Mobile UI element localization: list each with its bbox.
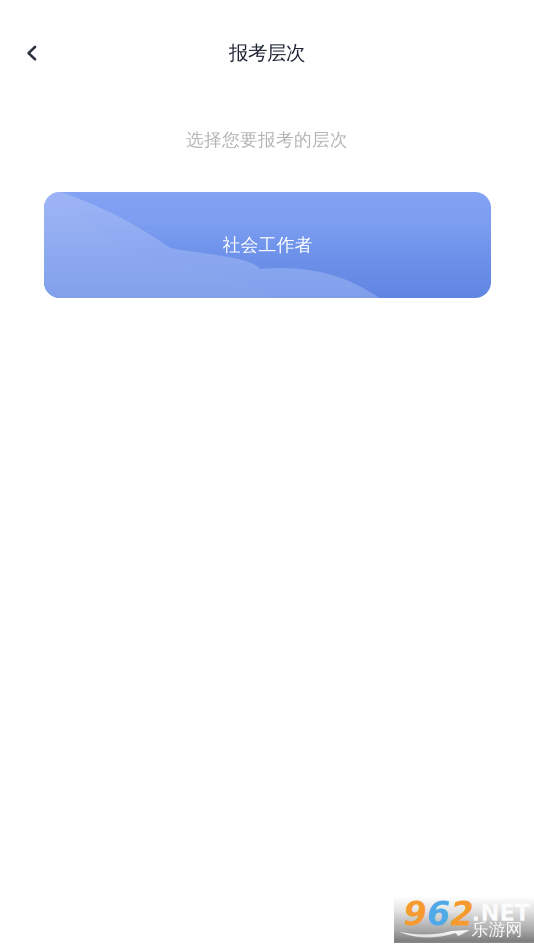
staticText: 社会工作者 — [222, 234, 312, 256]
button[interactable]: 返回 — [10, 31, 54, 75]
staticText: 乐游网 — [471, 919, 522, 940]
button[interactable]: 社会工作者 — [44, 192, 491, 298]
staticText: 9 — [403, 895, 426, 933]
staticText: 2 — [450, 895, 473, 933]
staticText: .NET — [471, 900, 529, 926]
staticText: 报考层次 — [229, 41, 305, 65]
staticText: 选择您要报考的层次 — [186, 129, 348, 151]
staticText: 6 — [427, 895, 450, 933]
